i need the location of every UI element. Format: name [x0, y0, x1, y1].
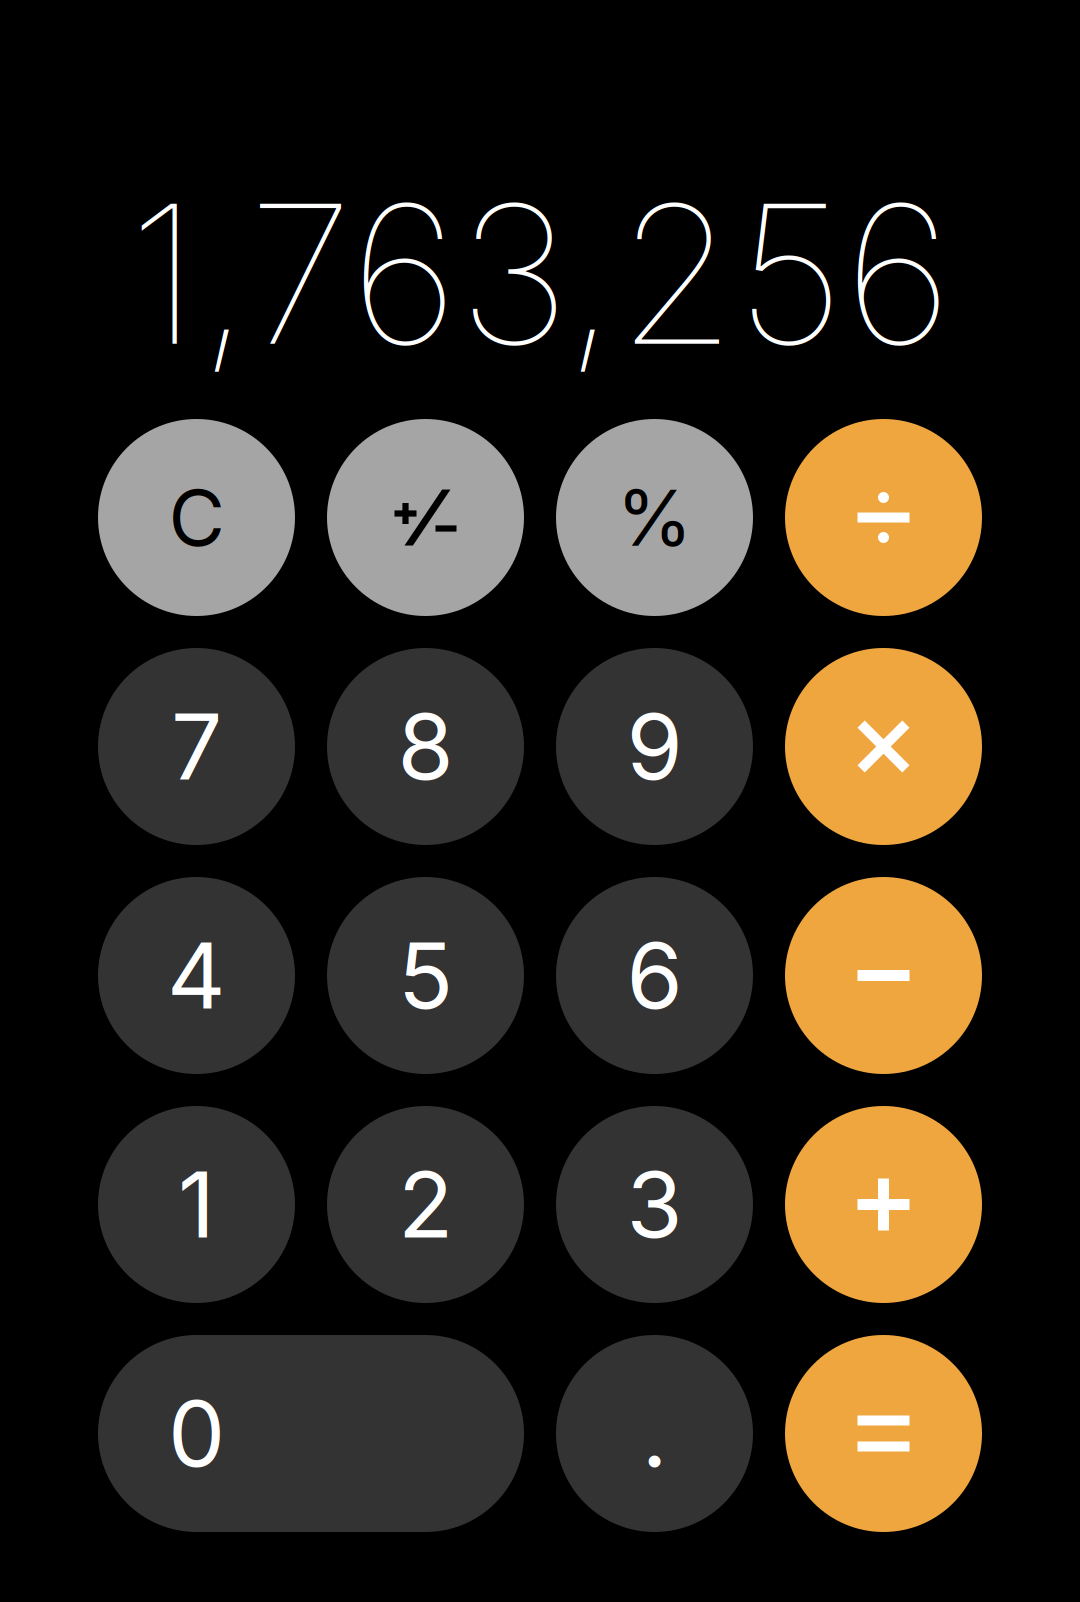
staticText: 5	[398, 921, 453, 1030]
staticText: 9	[626, 692, 682, 801]
button[interactable]: C	[98, 419, 295, 616]
staticText: 1	[178, 1150, 215, 1259]
staticText: 4	[167, 921, 226, 1030]
button[interactable]: Multiply	[785, 648, 982, 845]
staticText: 2	[398, 1150, 453, 1259]
staticText: .	[641, 1379, 667, 1488]
staticText: 6	[626, 921, 682, 1030]
staticText: 8	[397, 692, 453, 801]
button[interactable]: 5	[327, 877, 524, 1074]
staticText: C	[168, 471, 224, 564]
button[interactable]: %	[556, 419, 753, 616]
staticText: 3	[626, 1150, 682, 1259]
staticText: 7	[171, 692, 222, 801]
staticText: 1,763,256	[128, 158, 952, 390]
button[interactable]: 8	[327, 648, 524, 845]
button[interactable]: 1	[98, 1106, 295, 1303]
button[interactable]: 9	[556, 648, 753, 845]
staticText: 0	[168, 1379, 225, 1488]
button[interactable]: 0	[98, 1335, 524, 1532]
button[interactable]: Subtract	[785, 877, 982, 1074]
button[interactable]: Divide	[785, 419, 982, 616]
button[interactable]: .	[556, 1335, 753, 1532]
button[interactable]: 2	[327, 1106, 524, 1303]
button[interactable]: Add	[785, 1106, 982, 1303]
button[interactable]: 6	[556, 877, 753, 1074]
button[interactable]: Toggle sign	[327, 419, 524, 616]
button[interactable]: 7	[98, 648, 295, 845]
staticText: %	[616, 471, 692, 564]
button[interactable]: 4	[98, 877, 295, 1074]
button[interactable]: Equals	[785, 1335, 982, 1532]
button[interactable]: 3	[556, 1106, 753, 1303]
